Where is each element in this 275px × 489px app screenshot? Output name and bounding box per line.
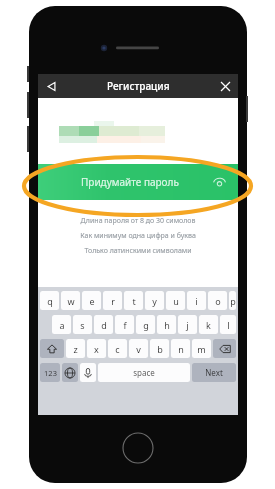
- button[interactable]: Показать пароль: [210, 173, 228, 191]
- staticText: Next: [205, 367, 223, 378]
- staticText: Длина пароля от 8 до 30 симолов: [38, 216, 238, 226]
- staticText: u: [173, 295, 179, 307]
- staticText: t: [132, 295, 136, 307]
- button[interactable]: p: [229, 291, 236, 310]
- button[interactable]: a: [52, 315, 71, 334]
- button[interactable]: y: [145, 291, 164, 310]
- button[interactable]: w: [61, 291, 80, 310]
- button[interactable]: Next: [192, 363, 236, 382]
- staticText: i: [195, 295, 198, 307]
- button[interactable]: Закрыть: [216, 77, 234, 95]
- staticText: f: [123, 319, 127, 331]
- staticText: a: [59, 319, 65, 331]
- staticText: q: [47, 295, 53, 307]
- button[interactable]: u: [166, 291, 185, 310]
- button[interactable]: Придумайте пароль: [38, 164, 238, 200]
- staticText: w: [67, 295, 75, 307]
- staticText: z: [73, 343, 78, 355]
- staticText: p: [230, 295, 236, 307]
- staticText: e: [89, 295, 95, 307]
- staticText: n: [178, 343, 184, 355]
- staticText: c: [115, 343, 120, 355]
- staticText: h: [164, 319, 170, 331]
- staticText: d: [101, 319, 107, 331]
- button[interactable]: v: [129, 339, 148, 358]
- staticText: Как минимум одна цифра и буква: [38, 231, 238, 241]
- button[interactable]: n: [171, 339, 190, 358]
- button[interactable]: Голосовой ввод: [80, 363, 96, 382]
- staticText: 123: [44, 368, 57, 378]
- button[interactable]: x: [87, 339, 106, 358]
- button[interactable]: g: [136, 315, 155, 334]
- staticText: Придумайте пароль: [81, 175, 179, 189]
- button[interactable]: b: [150, 339, 169, 358]
- button[interactable]: Сменить язык: [62, 363, 78, 382]
- staticText: k: [206, 319, 211, 331]
- staticText: space: [133, 367, 155, 378]
- staticText: j: [186, 319, 189, 331]
- button[interactable]: 123: [40, 363, 60, 382]
- button[interactable]: d: [94, 315, 113, 334]
- staticText: o: [215, 295, 221, 307]
- button[interactable]: q: [40, 291, 59, 310]
- staticText: v: [136, 343, 141, 355]
- button[interactable]: j: [178, 315, 197, 334]
- staticText: y: [152, 295, 157, 307]
- button[interactable]: f: [115, 315, 134, 334]
- staticText: r: [111, 295, 115, 307]
- button[interactable]: l: [220, 315, 236, 334]
- staticText: g: [143, 319, 149, 331]
- button[interactable]: z: [66, 339, 85, 358]
- button[interactable]: space: [98, 363, 190, 382]
- button[interactable]: o: [208, 291, 227, 310]
- staticText: l: [227, 319, 230, 331]
- button[interactable]: Назад: [42, 77, 60, 95]
- button[interactable]: s: [73, 315, 92, 334]
- button[interactable]: h: [157, 315, 176, 334]
- button[interactable]: k: [199, 315, 218, 334]
- staticText: s: [80, 319, 85, 331]
- button[interactable]: t: [124, 291, 143, 310]
- button[interactable]: e: [82, 291, 101, 310]
- button[interactable]: r: [103, 291, 122, 310]
- button[interactable]: c: [108, 339, 127, 358]
- button[interactable]: i: [187, 291, 206, 310]
- staticText: m: [197, 343, 206, 355]
- button[interactable]: Shift: [40, 339, 64, 358]
- button[interactable]: m: [192, 339, 211, 358]
- staticText: Регистрация: [107, 79, 170, 93]
- staticText: Только латинскими символами: [38, 246, 238, 256]
- button[interactable]: Удалить: [213, 339, 236, 358]
- staticText: b: [157, 343, 163, 355]
- staticText: x: [94, 343, 99, 355]
